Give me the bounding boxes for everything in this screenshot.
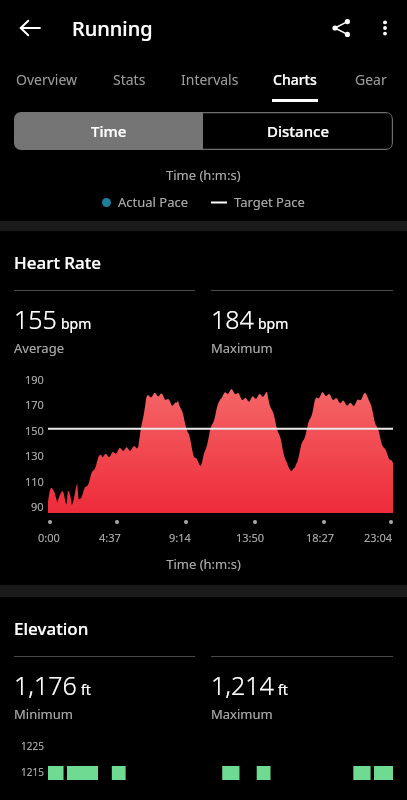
staticText: 18:27 [306, 530, 335, 545]
staticText: Running [72, 15, 153, 42]
staticText: 1,176 [14, 668, 77, 702]
staticText: 170 [25, 397, 44, 412]
staticText: 110 [25, 474, 44, 489]
staticText: Maximum [211, 705, 273, 723]
staticText: 1,214 [211, 668, 274, 702]
staticText: Time [91, 121, 127, 141]
staticText: Minimum [14, 705, 73, 723]
staticText: 1215 [21, 765, 44, 779]
staticText: Time (h:m:s) [14, 555, 393, 573]
staticText: Maximum [211, 339, 273, 357]
button[interactable]: Distance [203, 112, 393, 150]
staticText: Intervals [181, 70, 239, 89]
staticText: 90 [31, 499, 44, 514]
staticText: Actual Pace [118, 193, 189, 211]
staticText: Gear [355, 70, 387, 89]
staticText: Distance [267, 121, 330, 141]
staticText: 1225 [21, 739, 44, 753]
staticText: 0:00 [38, 530, 60, 545]
button[interactable]: Intervals [165, 56, 254, 102]
staticText: bpm [61, 314, 92, 333]
staticText: 155 [14, 302, 57, 336]
button[interactable]: Gear [335, 56, 407, 102]
staticText: 184 [211, 302, 254, 336]
staticText: bpm [258, 314, 289, 333]
staticText: 23:04 [364, 530, 393, 545]
button[interactable]: More options [363, 6, 407, 50]
button[interactable]: Charts [254, 56, 335, 102]
staticText: Time (h:m:s) [166, 166, 241, 184]
staticText: ft [278, 680, 288, 699]
staticText: 150 [25, 423, 44, 438]
button[interactable]: Share [319, 6, 363, 50]
staticText: Heart Rate [14, 251, 102, 274]
staticText: ft [81, 680, 91, 699]
button[interactable]: Time [14, 112, 203, 150]
staticText: Stats [113, 70, 146, 89]
staticText: Charts [273, 70, 317, 89]
staticText: 190 [25, 372, 44, 387]
staticText: Average [14, 339, 64, 357]
button[interactable]: Stats [93, 56, 165, 102]
staticText: Elevation [14, 617, 89, 640]
staticText: Target Pace [234, 193, 305, 211]
staticText: 4:37 [99, 530, 121, 545]
button[interactable]: Overview [0, 56, 93, 102]
staticText: Overview [16, 70, 78, 89]
staticText: 13:50 [236, 530, 265, 545]
button[interactable]: Back [8, 6, 52, 50]
staticText: 9:14 [169, 530, 191, 545]
staticText: 130 [25, 448, 44, 463]
